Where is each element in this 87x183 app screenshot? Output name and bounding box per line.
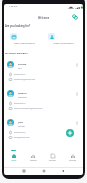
staticText: Kumari xyxy=(18,92,27,95)
staticText: kumari.srinivasan@gmail.com xyxy=(14,107,43,110)
staticText: 9876543210 xyxy=(14,73,26,76)
staticText: Book Appointments xyxy=(14,42,35,45)
button[interactable]: Video Consultations xyxy=(45,30,81,49)
staticText: Records xyxy=(49,159,57,162)
button[interactable]: Kumari xyxy=(6,88,81,115)
button[interactable]: Records xyxy=(43,148,63,167)
button[interactable]: Book Appointments xyxy=(7,30,42,49)
staticText: Home xyxy=(11,159,17,162)
button[interactable]: Back xyxy=(61,169,65,173)
staticText: Favorite xyxy=(69,159,77,162)
button[interactable]: Add family member xyxy=(66,129,74,137)
button[interactable]: Srinath xyxy=(6,59,81,86)
button[interactable]: App logo xyxy=(72,14,78,20)
staticText: 9876543210 xyxy=(14,131,26,134)
button[interactable]: Reports xyxy=(23,148,43,167)
button[interactable]: Home xyxy=(42,169,46,173)
staticText: Self xyxy=(18,67,22,70)
staticText: My family members xyxy=(5,52,28,55)
staticText: Reports xyxy=(30,159,37,162)
button[interactable]: More options xyxy=(75,121,79,125)
staticText: jyoti@gmail.com xyxy=(14,136,30,139)
staticText: Mother xyxy=(18,125,25,128)
staticText: Are you looking for? xyxy=(5,24,31,27)
staticText: 1:48 PM xyxy=(9,5,18,8)
button[interactable]: Favorite xyxy=(63,148,83,167)
button[interactable]: Jyoti xyxy=(6,117,81,144)
button[interactable]: More options xyxy=(75,92,79,96)
staticText: Srinath xyxy=(18,63,27,66)
staticText: srinivasan@gmail.com xyxy=(14,78,36,81)
button[interactable]: Home xyxy=(4,148,23,167)
staticText: Jyoti xyxy=(18,121,24,124)
staticText: Daughter xyxy=(18,96,27,99)
button[interactable]: More options xyxy=(75,63,79,67)
staticText: Video Consultations xyxy=(53,42,74,45)
staticText: 9876543210 xyxy=(14,102,26,105)
staticText: Welcome xyxy=(38,16,50,19)
button[interactable]: Recents xyxy=(22,169,26,173)
